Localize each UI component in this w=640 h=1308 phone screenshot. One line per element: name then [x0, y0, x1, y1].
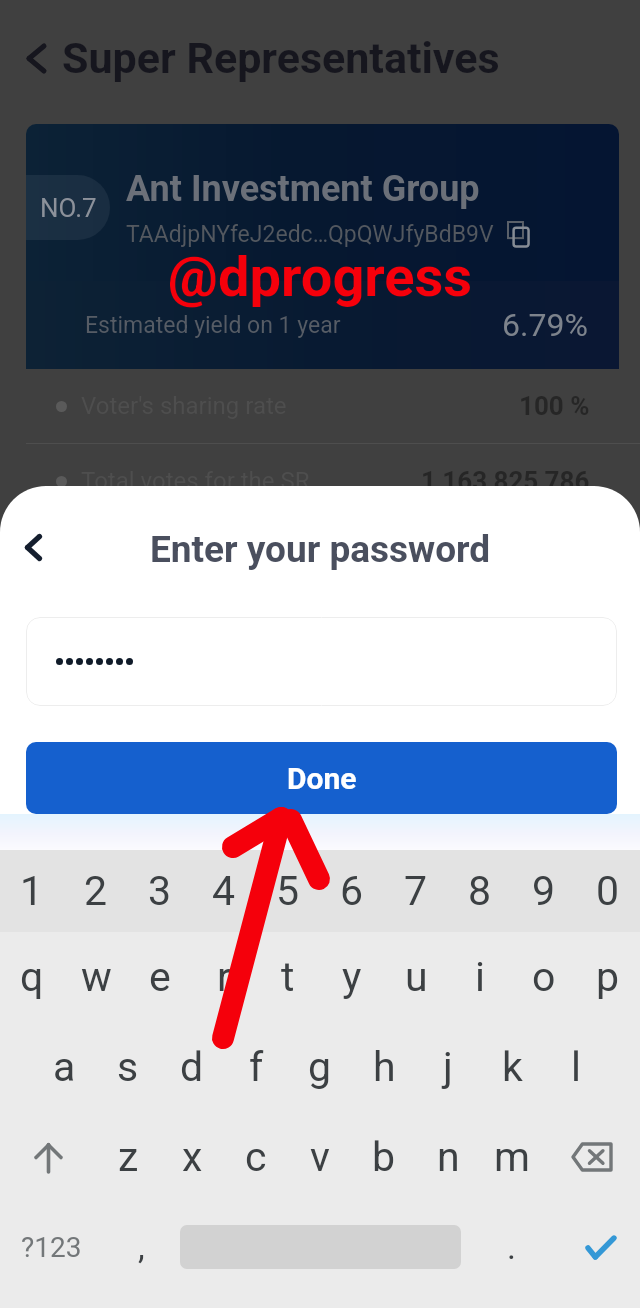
- staticText: x: [182, 1133, 203, 1181]
- button[interactable]: g: [288, 1022, 352, 1112]
- staticText: e: [149, 953, 171, 1001]
- button[interactable]: d: [160, 1022, 224, 1112]
- staticText: p: [596, 953, 620, 1001]
- button[interactable]: h: [352, 1022, 416, 1112]
- staticText: z: [118, 1133, 139, 1181]
- button[interactable]: Total votes for the SR: [0, 444, 640, 518]
- button[interactable]: Back: [9, 523, 57, 571]
- button[interactable]: Voter's sharing rate: [0, 369, 640, 443]
- staticText: 7: [404, 867, 428, 915]
- staticText: @dprogress: [0, 244, 640, 310]
- staticText: TAAdjpNYfeJ2edc…QpQWJfyBdB9V: [126, 221, 494, 248]
- staticText: b: [372, 1133, 396, 1181]
- staticText: f: [249, 1043, 264, 1091]
- staticText: 0: [596, 867, 620, 915]
- staticText: 4: [212, 867, 236, 915]
- button[interactable]: NO.7: [26, 175, 110, 240]
- staticText: y: [342, 953, 362, 1001]
- staticText: g: [308, 1043, 332, 1091]
- staticText: 5: [276, 867, 300, 915]
- button[interactable]: m: [480, 1112, 544, 1202]
- button[interactable]: 1: [0, 850, 64, 932]
- staticText: i: [475, 953, 485, 1001]
- staticText: Estimated yield on 1 year: [85, 312, 341, 339]
- button[interactable]: Shift: [0, 1112, 96, 1202]
- staticText: u: [405, 953, 428, 1001]
- staticText: 8: [468, 867, 492, 915]
- button[interactable]: y: [320, 932, 384, 1022]
- staticText: 9: [532, 867, 556, 915]
- staticText: Enter your password: [0, 528, 640, 571]
- button[interactable]: .: [461, 1202, 561, 1292]
- button[interactable]: [26, 617, 617, 706]
- button[interactable]: Back: [5, 23, 67, 93]
- button[interactable]: a: [32, 1022, 96, 1112]
- button[interactable]: c: [224, 1112, 288, 1202]
- staticText: NO.7: [40, 193, 97, 223]
- staticText: a: [53, 1043, 76, 1091]
- button[interactable]: 4: [192, 850, 256, 932]
- button[interactable]: k: [480, 1022, 544, 1112]
- staticText: Done: [287, 761, 357, 796]
- staticText: h: [373, 1043, 396, 1091]
- button[interactable]: l: [544, 1022, 608, 1112]
- button[interactable]: i: [448, 932, 512, 1022]
- button[interactable]: b: [352, 1112, 416, 1202]
- button[interactable]: Backspace: [544, 1112, 640, 1202]
- button[interactable]: 8: [448, 850, 512, 932]
- button[interactable]: u: [384, 932, 448, 1022]
- button[interactable]: o: [512, 932, 576, 1022]
- staticText: t: [281, 953, 295, 1001]
- button[interactable]: j: [416, 1022, 480, 1112]
- button[interactable]: 9: [512, 850, 576, 932]
- staticText: v: [310, 1133, 330, 1181]
- staticText: l: [571, 1043, 581, 1091]
- staticText: 1: [20, 867, 44, 915]
- staticText: j: [443, 1043, 453, 1091]
- button[interactable]: r: [192, 932, 256, 1022]
- staticText: 6.79%: [502, 306, 588, 344]
- staticText: w: [81, 953, 112, 1001]
- button[interactable]: Copy address: [503, 219, 533, 249]
- button[interactable]: v: [288, 1112, 352, 1202]
- staticText: s: [117, 1043, 139, 1091]
- button[interactable]: x: [160, 1112, 224, 1202]
- button[interactable]: 7: [384, 850, 448, 932]
- staticText: r: [217, 953, 231, 1001]
- button[interactable]: ,: [102, 1202, 180, 1292]
- staticText: 3: [148, 867, 172, 915]
- button[interactable]: 0: [576, 850, 640, 932]
- button[interactable]: w: [64, 932, 128, 1022]
- button[interactable]: t: [256, 932, 320, 1022]
- button[interactable]: ?123: [0, 1202, 102, 1292]
- staticText: Ant Investment Group: [126, 168, 480, 210]
- button[interactable]: z: [96, 1112, 160, 1202]
- button[interactable]: s: [96, 1022, 160, 1112]
- staticText: Total votes for the SR: [81, 467, 310, 495]
- staticText: ?123: [21, 1231, 82, 1264]
- button[interactable]: 5: [256, 850, 320, 932]
- button[interactable]: Enter: [561, 1202, 640, 1292]
- staticText: 2: [84, 867, 108, 915]
- button[interactable]: f: [224, 1022, 288, 1112]
- button[interactable]: 6: [320, 850, 384, 932]
- staticText: 100 %: [519, 391, 590, 421]
- button[interactable]: 3: [128, 850, 192, 932]
- staticText: c: [245, 1133, 267, 1181]
- button[interactable]: p: [576, 932, 640, 1022]
- staticText: n: [437, 1133, 460, 1181]
- staticText: Voter's sharing rate: [81, 392, 287, 420]
- staticText: k: [502, 1043, 523, 1091]
- staticText: q: [20, 953, 44, 1001]
- button[interactable]: Done: [26, 742, 617, 814]
- staticText: o: [532, 953, 556, 1001]
- button[interactable]: e: [128, 932, 192, 1022]
- button[interactable]: q: [0, 932, 64, 1022]
- staticText: d: [180, 1043, 204, 1091]
- staticText: m: [494, 1133, 530, 1181]
- staticText: .: [507, 1227, 516, 1267]
- button[interactable]: 2: [64, 850, 128, 932]
- button[interactable]: n: [416, 1112, 480, 1202]
- staticText: Super Representatives: [62, 33, 500, 83]
